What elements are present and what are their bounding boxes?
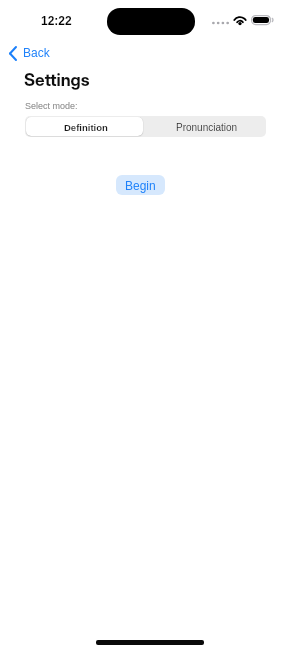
staticText: 12:22: [41, 14, 72, 27]
button[interactable]: Back: [6, 43, 53, 64]
staticText: Begin: [125, 179, 156, 192]
button[interactable]: Pronunciation: [144, 116, 266, 137]
button[interactable]: Definition: [26, 117, 143, 136]
staticText: Pronunciation: [176, 122, 238, 133]
staticText: Settings: [24, 70, 90, 91]
button[interactable]: Begin: [116, 175, 165, 195]
staticText: Select mode:: [25, 101, 78, 111]
staticText: Back: [23, 46, 50, 59]
staticText: Definition: [64, 122, 108, 133]
